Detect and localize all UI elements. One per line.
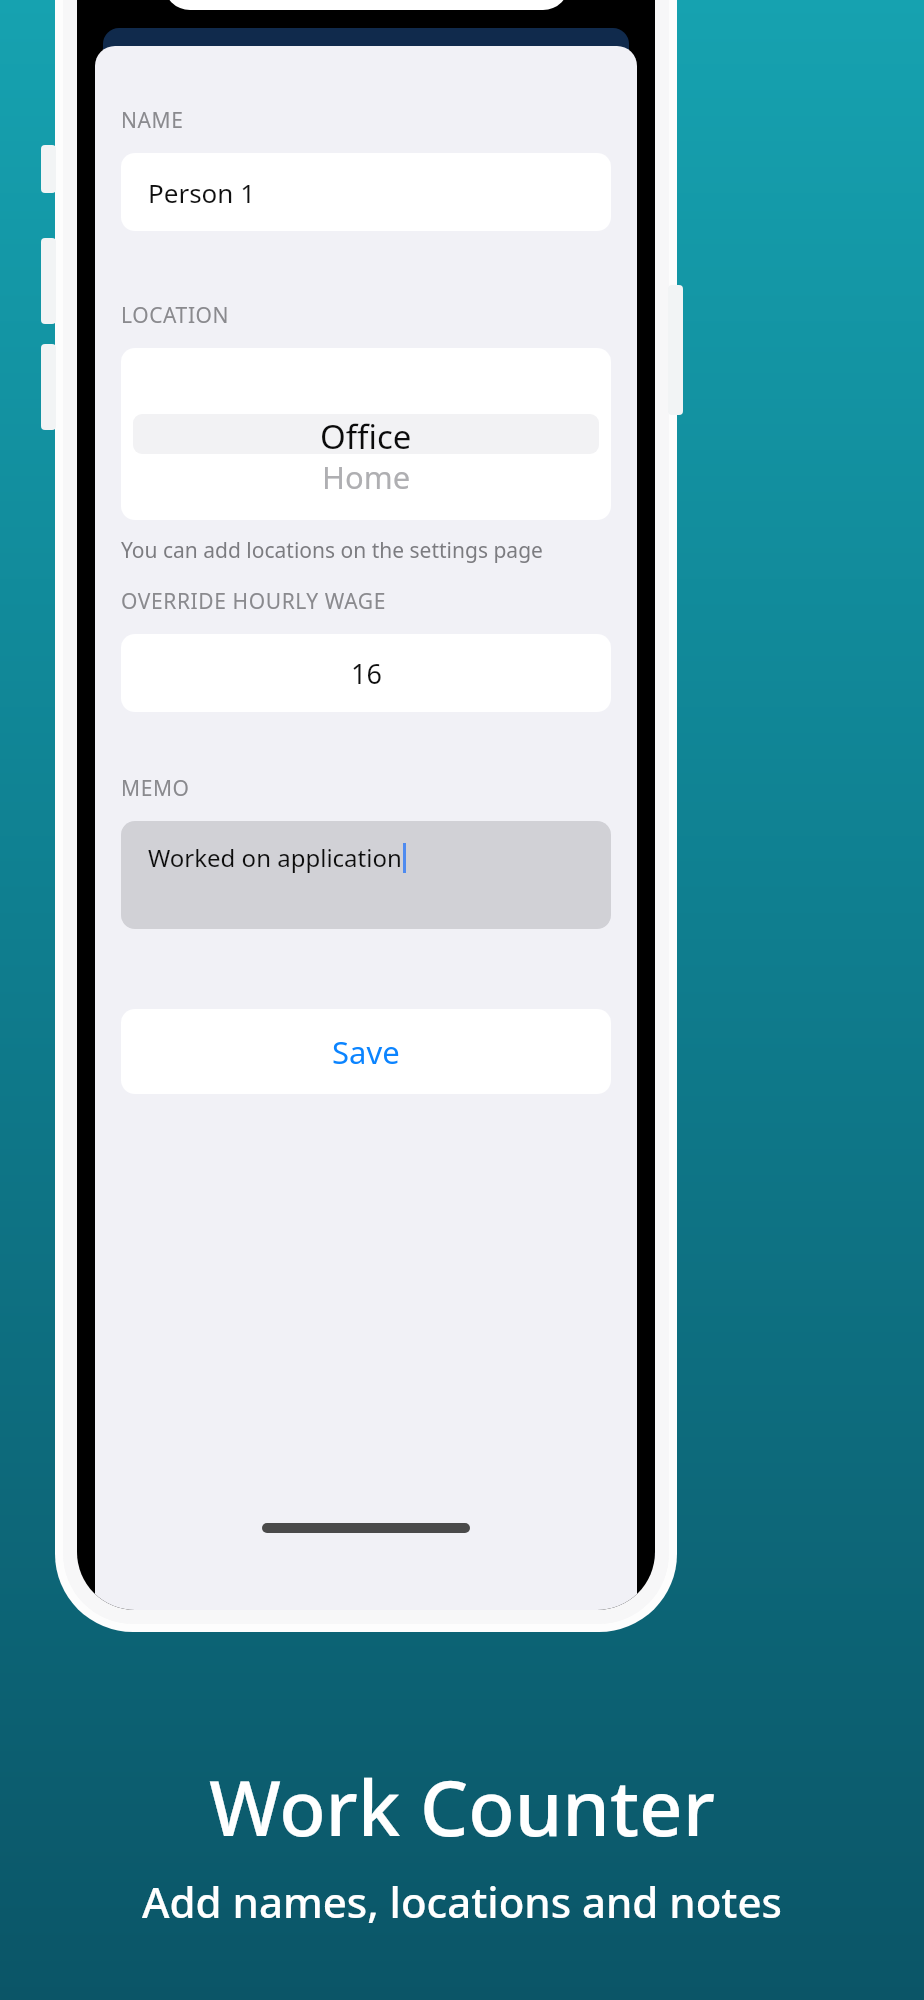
staticText: Office (320, 414, 412, 454)
staticText: Worked on application (148, 841, 402, 874)
staticText: NAME (121, 106, 184, 135)
button[interactable]: 16 (121, 634, 611, 712)
button[interactable]: Person 1 (121, 153, 611, 231)
staticText: Home (322, 456, 411, 498)
button[interactable]: Office (121, 348, 611, 520)
staticText: Work Counter (209, 1755, 715, 1859)
staticText: Person 1 (148, 175, 256, 210)
staticText: Add names, locations and notes (142, 1873, 782, 1930)
staticText: OVERRIDE HOURLY WAGE (121, 587, 386, 616)
staticText: MEMO (121, 774, 190, 803)
staticText: LOCATION (121, 301, 230, 330)
staticText: 16 (351, 655, 382, 692)
button[interactable]: Worked on application (121, 821, 611, 929)
staticText: Save (332, 1031, 400, 1073)
staticText: You can add locations on the settings pa… (121, 536, 543, 565)
button[interactable]: Save (121, 1009, 611, 1094)
